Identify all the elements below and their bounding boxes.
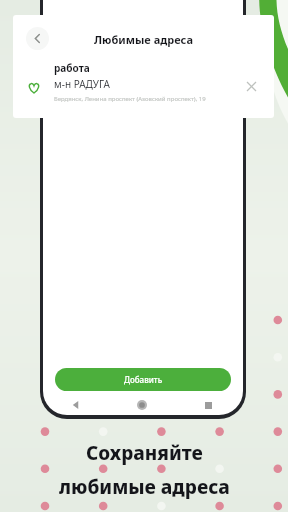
staticText: Добавить (124, 374, 163, 385)
staticText: Любимые адреса (13, 32, 274, 47)
button[interactable]: Remove (234, 61, 268, 105)
button[interactable]: Добавить (55, 368, 231, 391)
staticText: Сохраняйте (86, 440, 203, 466)
staticText: любимые адреса (59, 474, 230, 500)
button[interactable]: Back (26, 27, 49, 50)
button[interactable]: Back (43, 395, 109, 415)
button[interactable]: Home (109, 395, 175, 415)
staticText: работа (54, 61, 90, 75)
button[interactable]: Recent apps (175, 395, 241, 415)
button[interactable]: работа (13, 61, 274, 113)
staticText: м-н РАДУГА (54, 77, 110, 91)
staticText: Бердянск, Ленина проспект (Азовский прос… (54, 95, 206, 103)
